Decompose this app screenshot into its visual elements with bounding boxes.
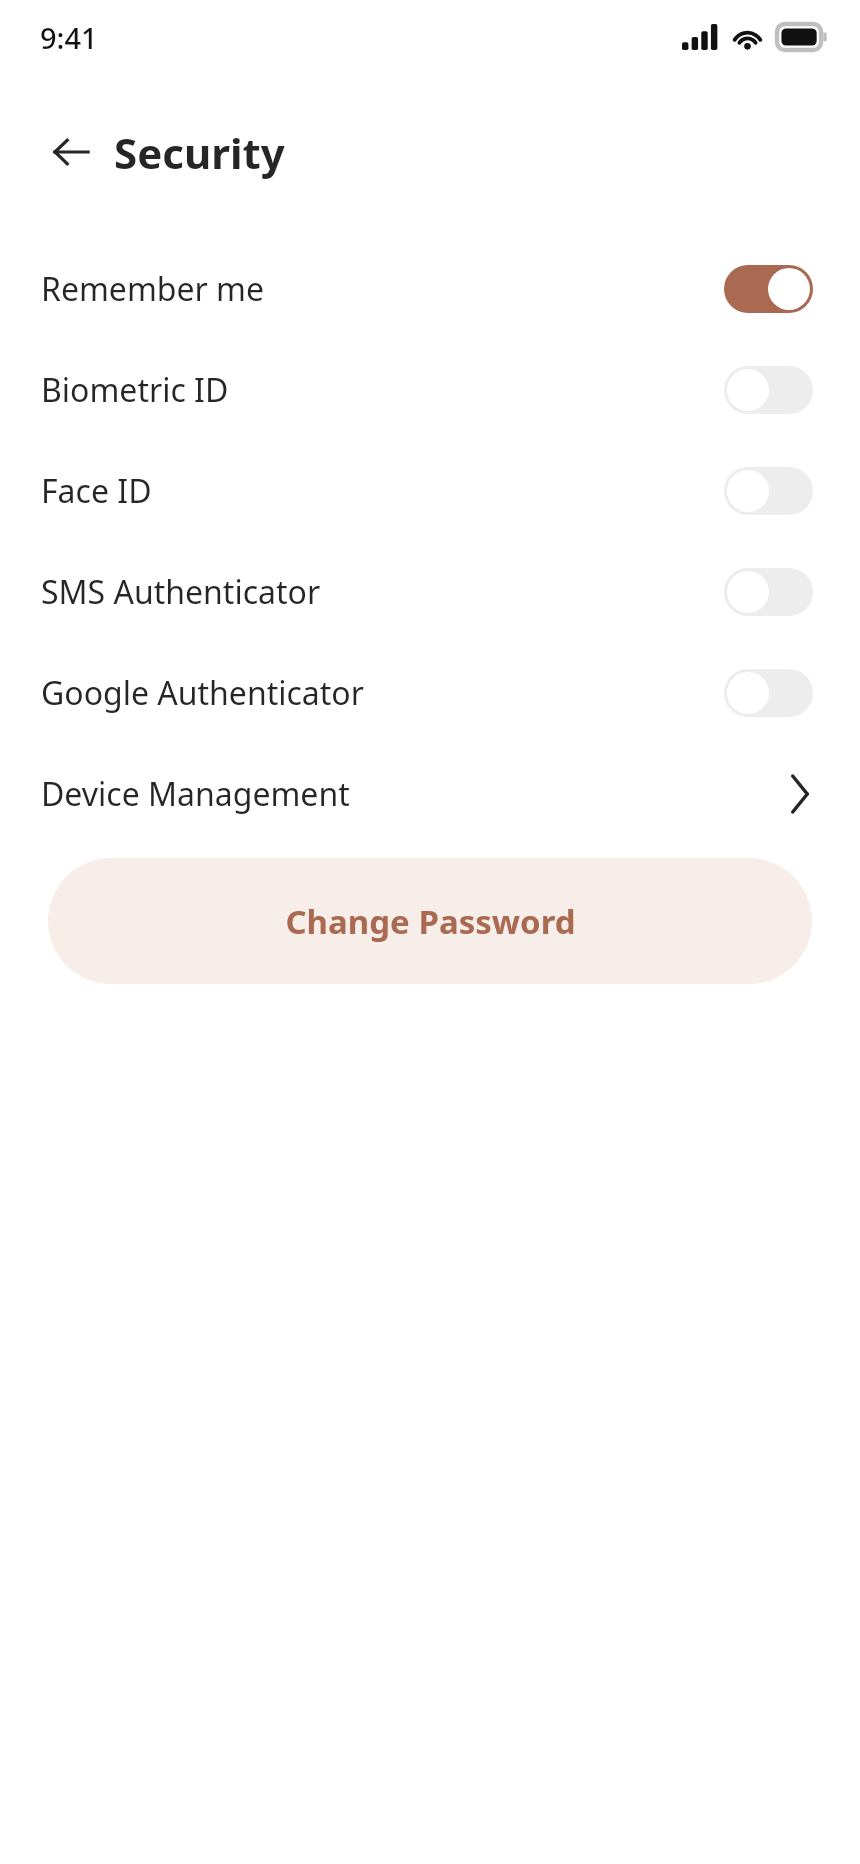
button[interactable]: Off — [724, 669, 813, 717]
button[interactable]: Google Authenticator — [0, 642, 860, 743]
button[interactable]: Off — [724, 568, 813, 616]
button[interactable]: Change Password — [48, 858, 812, 984]
staticText: SMS Authenticator — [41, 570, 724, 614]
button[interactable]: Back — [44, 125, 98, 179]
button[interactable]: Biometric ID — [0, 339, 860, 440]
button[interactable]: Face ID — [0, 440, 860, 541]
staticText: Remember me — [41, 267, 724, 311]
staticText: Google Authenticator — [41, 671, 724, 715]
staticText: Biometric ID — [41, 368, 724, 412]
staticText: Face ID — [41, 469, 724, 513]
button[interactable]: SMS Authenticator — [0, 541, 860, 642]
staticText: Security — [114, 124, 285, 181]
staticText: Change Password — [285, 899, 576, 944]
button[interactable]: Device Management — [0, 743, 860, 844]
button[interactable]: Off — [724, 366, 813, 414]
staticText: Device Management — [41, 772, 787, 816]
button[interactable]: Off — [724, 467, 813, 515]
staticText: 9:41 — [40, 18, 98, 57]
button[interactable]: On — [724, 265, 813, 313]
button[interactable]: Remember me — [0, 238, 860, 339]
